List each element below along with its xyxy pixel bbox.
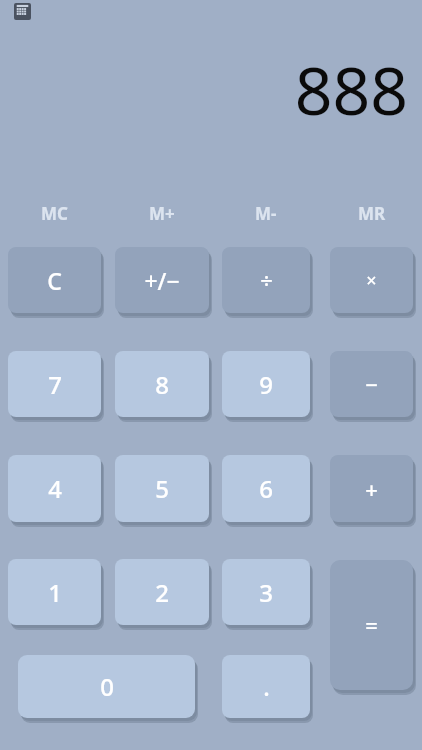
button[interactable]: 6 xyxy=(222,455,310,522)
staticText: 7 xyxy=(48,368,62,401)
button[interactable]: 8 xyxy=(115,351,209,417)
staticText: MR xyxy=(358,202,386,225)
button[interactable]: 4 xyxy=(8,455,101,522)
button[interactable]: 3 xyxy=(222,559,310,625)
staticText: 2 xyxy=(155,576,169,609)
button[interactable]: 0 xyxy=(18,655,195,718)
button[interactable]: Clear xyxy=(8,247,101,313)
button[interactable]: 2 xyxy=(115,559,209,625)
staticText: 1 xyxy=(48,576,62,609)
button[interactable]: 9 xyxy=(222,351,310,417)
staticText: 8 xyxy=(155,368,169,401)
button[interactable]: Equals xyxy=(330,560,413,690)
staticText: 3 xyxy=(259,576,273,609)
staticText: +/− xyxy=(144,265,180,296)
staticText: M+ xyxy=(149,202,175,225)
button[interactable]: Calculator xyxy=(14,3,31,20)
button[interactable]: 5 xyxy=(115,455,209,522)
staticText: − xyxy=(365,369,378,399)
staticText: = xyxy=(365,610,378,640)
button[interactable]: MC xyxy=(8,198,101,228)
staticText: 0 xyxy=(100,670,114,703)
staticText: 5 xyxy=(155,472,169,505)
button[interactable]: Decimal point xyxy=(222,655,310,718)
staticText: 4 xyxy=(48,472,62,505)
staticText: 888 xyxy=(294,44,408,124)
button[interactable]: M+ xyxy=(115,198,209,228)
staticText: MC xyxy=(41,202,68,225)
staticText: C xyxy=(47,265,62,296)
staticText: × xyxy=(366,268,377,293)
staticText: + xyxy=(365,474,378,504)
button[interactable]: 7 xyxy=(8,351,101,417)
staticText: ÷ xyxy=(260,265,273,295)
staticText: 6 xyxy=(259,472,273,505)
staticText: . xyxy=(263,670,270,703)
button[interactable]: Plus xyxy=(330,455,413,522)
button[interactable]: 1 xyxy=(8,559,101,625)
staticText: M- xyxy=(255,202,277,225)
button[interactable]: MR xyxy=(330,198,413,228)
button[interactable]: Minus xyxy=(330,351,413,417)
button[interactable]: Divide xyxy=(222,247,310,313)
staticText: 9 xyxy=(259,368,273,401)
button[interactable]: Multiply xyxy=(330,247,413,313)
button[interactable]: M- xyxy=(222,198,310,228)
button[interactable]: Plus minus xyxy=(115,247,209,313)
